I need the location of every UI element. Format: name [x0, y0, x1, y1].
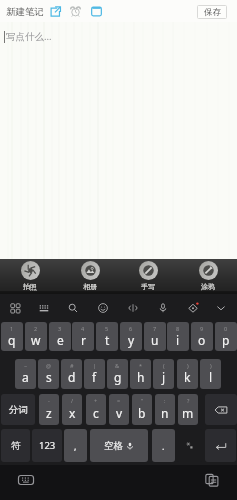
- button[interactable]: ": [132, 394, 152, 425]
- staticText: u: [151, 332, 159, 348]
- button[interactable]: :: [155, 394, 175, 425]
- staticText: a: [22, 369, 29, 385]
- button[interactable]: .: [152, 429, 175, 462]
- button[interactable]: 7: [144, 322, 166, 351]
- button[interactable]: (: [153, 359, 174, 389]
- button[interactable]: Search: [64, 299, 82, 317]
- button[interactable]: 拍照: [12, 261, 48, 291]
- staticText: &: [115, 362, 120, 369]
- button[interactable]: Set reminder: [68, 4, 83, 19]
- button[interactable]: +: [86, 394, 106, 425]
- button[interactable]: ,: [64, 429, 87, 462]
- button[interactable]: ): [177, 359, 198, 389]
- staticText: d: [68, 369, 76, 385]
- staticText: -: [48, 397, 50, 404]
- button[interactable]: 手写: [130, 261, 166, 291]
- button[interactable]: 2: [25, 322, 47, 351]
- staticText: v: [116, 405, 123, 421]
- button[interactable]: Backspace: [205, 394, 237, 425]
- button[interactable]: 相册: [72, 261, 108, 291]
- button[interactable]: ): [200, 359, 221, 389]
- staticText: x: [69, 405, 76, 421]
- staticText: ~: [24, 362, 28, 369]
- button[interactable]: ~: [15, 359, 36, 389]
- button[interactable]: 涂鸦: [190, 261, 226, 291]
- staticText: s: [46, 369, 52, 385]
- button[interactable]: Move cursor: [124, 299, 142, 317]
- button[interactable]: Share note: [48, 4, 63, 19]
- staticText: ): [187, 362, 189, 369]
- button[interactable]: 5: [96, 322, 118, 351]
- staticText: 7: [153, 325, 157, 332]
- button[interactable]: |: [84, 359, 105, 389]
- button[interactable]: 空格: [90, 429, 148, 462]
- staticText: y: [128, 332, 135, 348]
- button[interactable]: Emoji: [94, 299, 112, 317]
- staticText: 0: [224, 325, 228, 332]
- staticText: ": [141, 397, 144, 404]
- staticText: q: [8, 332, 16, 348]
- button[interactable]: Enter: [205, 429, 236, 462]
- staticText: z: [46, 405, 52, 421]
- button[interactable]: @: [38, 359, 59, 389]
- staticText: 空格: [104, 440, 123, 452]
- staticText: i: [176, 332, 180, 348]
- button[interactable]: Voice input: [154, 299, 172, 317]
- button[interactable]: 保存: [197, 5, 227, 19]
- staticText: 4: [81, 325, 85, 332]
- staticText: 涂鸦: [201, 282, 215, 291]
- staticText: 符: [11, 440, 21, 452]
- staticText: 3: [58, 325, 62, 332]
- staticText: *: [139, 362, 143, 369]
- staticText: w: [31, 332, 41, 348]
- staticText: .: [162, 440, 165, 452]
- button[interactable]: 1: [1, 322, 23, 351]
- button[interactable]: 9: [191, 322, 213, 351]
- staticText: o: [198, 332, 206, 348]
- button[interactable]: &: [107, 359, 128, 389]
- button[interactable]: #: [61, 359, 82, 389]
- button[interactable]: Theme: [184, 299, 202, 317]
- button[interactable]: Collapse: [212, 299, 230, 317]
- button[interactable]: Recent apps: [200, 468, 224, 492]
- button[interactable]: 4: [72, 322, 94, 351]
- staticText: 拍照: [23, 282, 37, 291]
- staticText: 手写: [141, 282, 155, 291]
- staticText: e: [57, 332, 64, 348]
- staticText: 9: [200, 325, 204, 332]
- staticText: /: [71, 397, 74, 404]
- staticText: p: [222, 332, 230, 348]
- button[interactable]: Note colour: [89, 4, 104, 19]
- button[interactable]: Sticker: [177, 429, 202, 462]
- button[interactable]: Apps: [6, 299, 24, 317]
- button[interactable]: 6: [120, 322, 142, 351]
- button[interactable]: Hide keyboard: [14, 468, 38, 492]
- button[interactable]: =: [109, 394, 129, 425]
- button[interactable]: 3: [49, 322, 71, 351]
- button[interactable]: Keyboard layout: [35, 299, 53, 317]
- staticText: b: [138, 405, 146, 421]
- staticText: t: [105, 332, 110, 348]
- staticText: @: [46, 362, 51, 369]
- staticText: 新建笔记: [6, 6, 44, 18]
- button[interactable]: ?: [178, 394, 198, 425]
- button[interactable]: *: [130, 359, 151, 389]
- staticText: l: [209, 369, 213, 385]
- staticText: |: [93, 362, 97, 369]
- staticText: 分词: [9, 404, 28, 416]
- staticText: 123: [39, 439, 56, 452]
- button[interactable]: 123: [32, 429, 62, 462]
- staticText: h: [137, 369, 145, 385]
- button[interactable]: 分词: [1, 394, 35, 425]
- button[interactable]: 8: [167, 322, 189, 351]
- staticText: n: [161, 405, 169, 421]
- button[interactable]: /: [62, 394, 82, 425]
- staticText: ?: [187, 397, 190, 404]
- staticText: 相册: [83, 282, 97, 291]
- staticText: 保存: [204, 7, 221, 18]
- staticText: 6: [129, 325, 133, 332]
- staticText: 8: [176, 325, 180, 332]
- button[interactable]: 0: [215, 322, 237, 351]
- button[interactable]: 符: [1, 429, 30, 462]
- button[interactable]: -: [39, 394, 59, 425]
